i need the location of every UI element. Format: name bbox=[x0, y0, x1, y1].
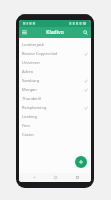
button[interactable]: Caster bbox=[19, 130, 91, 139]
button[interactable]: Home bbox=[48, 173, 62, 182]
button[interactable]: Search bbox=[81, 28, 90, 37]
button[interactable]: Finn bbox=[19, 121, 91, 130]
staticText: Adrea bbox=[22, 69, 88, 74]
button[interactable]: Universer bbox=[19, 58, 91, 67]
staticText: Universer bbox=[22, 60, 88, 65]
button[interactable]: Recent apps bbox=[70, 173, 84, 182]
staticText: Bovine Copperclad bbox=[22, 51, 84, 56]
staticText: Kladivo bbox=[46, 29, 64, 36]
button[interactable]: Samburg bbox=[19, 76, 91, 85]
staticText: Lumberjack bbox=[22, 42, 88, 47]
button[interactable]: Looking bbox=[19, 112, 91, 121]
staticText: Samburg bbox=[22, 78, 84, 83]
staticText: Caster bbox=[22, 132, 88, 137]
staticText: Finn bbox=[22, 123, 88, 128]
staticText: Thunderill bbox=[22, 96, 88, 101]
button[interactable]: Adrea bbox=[19, 67, 91, 76]
staticText: Looking bbox=[22, 114, 88, 119]
button[interactable]: Morgan bbox=[19, 85, 91, 94]
staticText: Morgan bbox=[22, 87, 84, 92]
button[interactable]: Bovine Copperclad bbox=[19, 49, 91, 58]
button[interactable]: Add new item bbox=[75, 156, 87, 168]
button[interactable]: Lumberjack bbox=[19, 40, 91, 49]
button[interactable]: Reisplanning bbox=[19, 103, 91, 112]
button[interactable]: Open navigation menu bbox=[20, 28, 29, 37]
button[interactable]: Thunderill bbox=[19, 94, 91, 103]
staticText: Reisplanning bbox=[22, 105, 84, 110]
button[interactable]: Back bbox=[27, 173, 41, 182]
